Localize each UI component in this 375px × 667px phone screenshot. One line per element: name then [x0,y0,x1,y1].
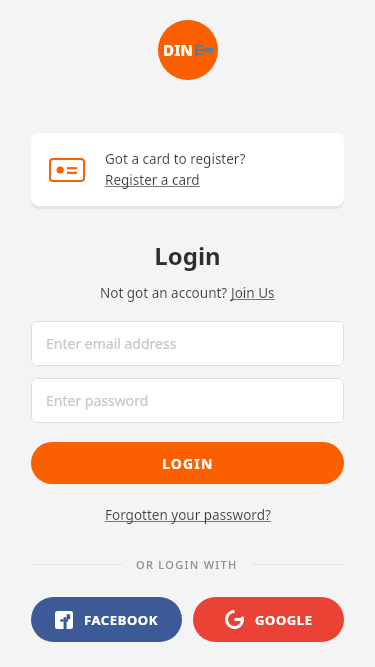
staticText: Got a card to register? [105,150,246,168]
button[interactable]: Got a card to register? [31,133,344,206]
staticText: Forgotten your password? [105,506,271,524]
button[interactable]: FACEBOOK [31,597,182,642]
button[interactable]: Enter email address [31,321,344,366]
staticText: DIN [163,40,194,60]
button[interactable]: GOOGLE [193,597,344,642]
staticText: Register a card [105,171,200,189]
button[interactable]: Enter password [31,378,344,423]
button[interactable]: Forgotten your password? [105,506,271,524]
staticText: Enter email address [46,334,177,353]
staticText: Enter password [46,391,149,410]
staticText: FACEBOOK [84,611,158,629]
staticText: OR LOGIN WITH [136,557,238,572]
staticText: GOOGLE [255,611,313,629]
staticText: Login [0,239,375,272]
staticText: Join Us [231,284,275,302]
staticText: Not got an account? [100,284,231,302]
staticText: LOGIN [162,454,214,473]
button[interactable]: Join Us [231,284,275,302]
button[interactable]: LOGIN [31,442,344,484]
